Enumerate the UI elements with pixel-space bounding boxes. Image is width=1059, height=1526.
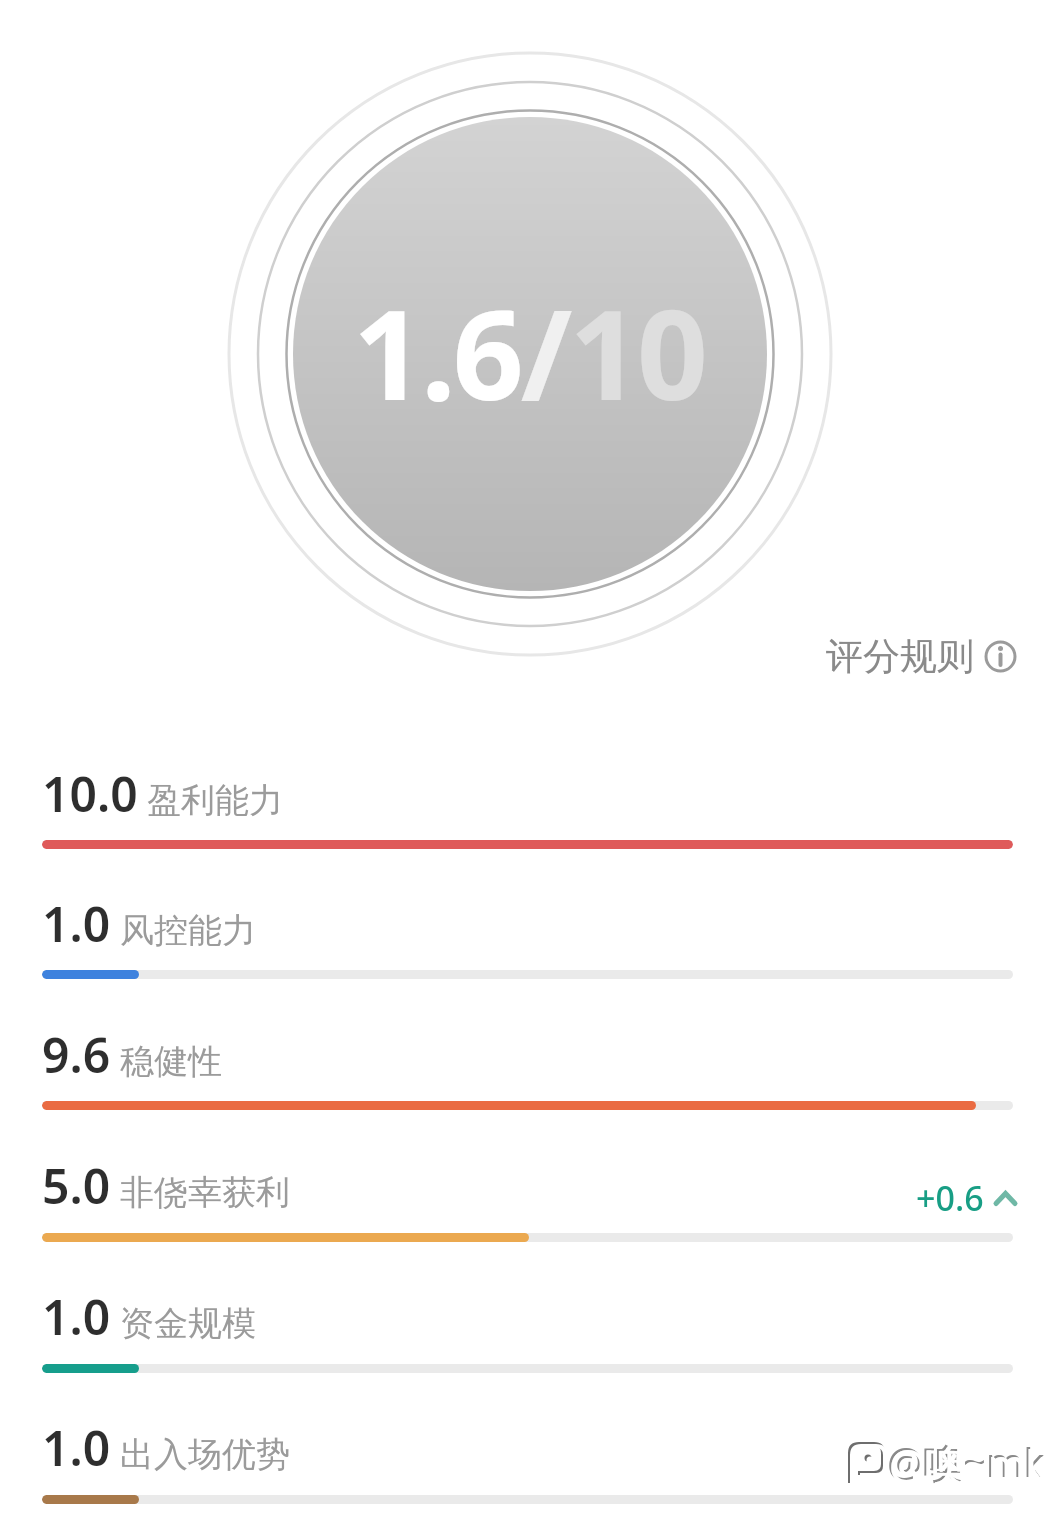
staticText: 1.6/10 (353, 267, 706, 436)
staticText: 10.0 (42, 761, 138, 826)
button[interactable]: 9.6 (42, 1022, 222, 1088)
button[interactable]: +0.6 (916, 1175, 1017, 1221)
staticText: @噢~mk (889, 1436, 1047, 1491)
staticText: 风控能力 (120, 909, 256, 952)
button[interactable]: 1.0 (42, 891, 256, 957)
staticText: 稳健性 (120, 1040, 222, 1083)
staticText: 5.0 (42, 1153, 111, 1218)
staticText: 1.0 (42, 891, 111, 956)
staticText: 非侥幸获利 (120, 1171, 290, 1214)
staticText: @噢~mk (890, 1437, 1048, 1492)
button[interactable]: 1.0 (42, 1415, 290, 1481)
button[interactable]: 10.0 (42, 761, 283, 827)
staticText: 1.0 (42, 1415, 111, 1480)
staticText: 资金规模 (120, 1302, 256, 1345)
button[interactable]: 评分规则 (826, 633, 1017, 680)
staticText: @噢~mk (887, 1434, 1045, 1489)
staticText: 盈利能力 (147, 779, 283, 822)
button[interactable]: 5.0 (42, 1153, 290, 1219)
button[interactable]: 1.0 (42, 1284, 256, 1350)
staticText: 评分规则 (826, 633, 974, 680)
staticText: +0.6 (916, 1175, 984, 1221)
staticText: 出入场优势 (120, 1433, 290, 1476)
staticText: 9.6 (42, 1022, 111, 1087)
staticText: 1.0 (42, 1284, 111, 1349)
